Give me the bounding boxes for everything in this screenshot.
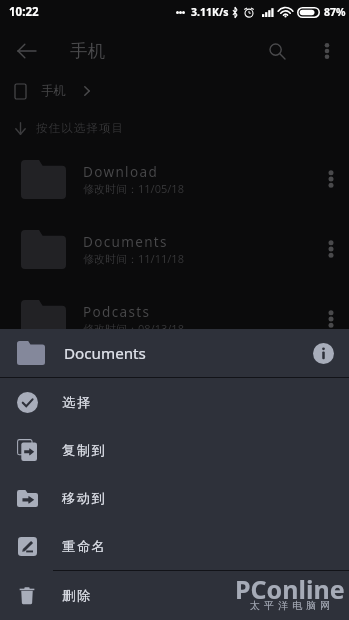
- staticText: 复制到: [62, 442, 107, 459]
- button[interactable]: Back: [14, 38, 40, 64]
- staticText: 重命名: [62, 538, 107, 555]
- button[interactable]: Item options: [314, 162, 348, 196]
- button[interactable]: 复制到: [0, 426, 349, 474]
- button[interactable]: Podcasts: [0, 284, 349, 354]
- staticText: PConline: [235, 572, 345, 606]
- button[interactable]: Item options: [314, 232, 348, 266]
- staticText: Podcasts: [83, 303, 151, 321]
- button[interactable]: 移动到: [0, 474, 349, 522]
- button[interactable]: Download: [0, 144, 349, 214]
- button[interactable]: 删除: [0, 571, 349, 619]
- staticText: 修改时间：08/13/18: [83, 321, 184, 336]
- staticText: Download: [83, 163, 159, 181]
- button[interactable]: Item options: [314, 302, 348, 336]
- staticText: 87%: [324, 5, 346, 19]
- staticText: 选择: [62, 394, 92, 411]
- staticText: 10:22: [9, 4, 39, 20]
- staticText: 手机: [41, 83, 66, 99]
- button[interactable]: Documents: [0, 329, 349, 377]
- staticText: 修改时间：11/05/18: [83, 181, 184, 196]
- button[interactable]: More options: [313, 37, 341, 65]
- staticText: 太平洋电脑网: [248, 599, 332, 612]
- staticText: 3.11K/s: [191, 5, 229, 19]
- staticText: 手机: [70, 40, 105, 62]
- staticText: 移动到: [62, 490, 107, 507]
- button[interactable]: Info: [305, 335, 341, 371]
- staticText: Documents: [64, 343, 305, 364]
- button[interactable]: Search: [263, 37, 291, 65]
- button[interactable]: 重命名: [0, 522, 349, 570]
- staticText: 删除: [62, 587, 92, 604]
- staticText: 按住以选择项目: [36, 121, 125, 135]
- button[interactable]: Documents: [0, 214, 349, 284]
- button[interactable]: 选择: [0, 378, 349, 426]
- staticText: 修改时间：11/11/18: [83, 251, 184, 266]
- staticText: Documents: [83, 233, 168, 251]
